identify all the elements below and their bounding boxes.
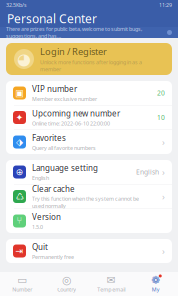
staticText: 20: [157, 89, 165, 97]
staticText: Member exclusive number: [32, 95, 97, 102]
button[interactable]: ⬗: [6, 130, 172, 154]
button[interactable]: ⑂: [6, 209, 172, 233]
button[interactable]: ▣: [6, 81, 172, 105]
staticText: ⊕: [15, 167, 23, 177]
staticText: Language setting: [32, 163, 98, 173]
button[interactable]: ✦: [6, 105, 172, 129]
staticText: Login / Register: [40, 45, 107, 58]
staticText: Online time: 2022-06-10 22:00:00: [32, 120, 110, 127]
staticText: ⇥: [15, 246, 23, 256]
staticText: Favorites: [32, 133, 66, 143]
staticText: My: [152, 286, 160, 293]
staticText: ⑂: [16, 216, 22, 225]
staticText: 11:29: [159, 1, 172, 9]
staticText: ⬗: [16, 137, 23, 147]
staticText: English: [136, 168, 159, 176]
staticText: ♺: [15, 191, 23, 202]
button[interactable]: Country: [44, 272, 89, 296]
staticText: ◕: [17, 50, 31, 68]
staticText: ✦: [15, 112, 23, 123]
button[interactable]: ⇥: [6, 239, 172, 263]
staticText: Permanently free: [32, 253, 74, 260]
staticText: ✉: [107, 274, 116, 286]
staticText: 32.5Kb/s: [6, 1, 27, 9]
staticText: Temp email: [97, 286, 125, 293]
staticText: ▣: [15, 88, 24, 98]
staticText: ›: [162, 136, 165, 148]
staticText: ▭: [17, 274, 27, 286]
staticText: Query all favorite numbers: [32, 144, 96, 151]
staticText: Version: [32, 212, 61, 222]
button[interactable]: ♺: [6, 184, 172, 208]
staticText: ›: [162, 166, 165, 178]
staticText: Personal Center: [7, 10, 97, 26]
button[interactable]: ⊕: [6, 160, 172, 184]
staticText: Clear cache: [32, 184, 75, 194]
button[interactable]: Number: [0, 272, 44, 296]
staticText: Number: [12, 286, 32, 293]
staticText: ◎: [62, 274, 71, 286]
staticText: Try this function when the system cannot…: [32, 195, 139, 209]
staticText: There are prizes for public beta, welcom…: [6, 25, 142, 40]
staticText: Country: [57, 286, 76, 293]
button[interactable]: ◕: [6, 43, 172, 75]
staticText: 10: [157, 113, 165, 122]
staticText: Upcoming new number: [32, 108, 120, 119]
staticText: ›: [162, 245, 165, 257]
staticText: English: [32, 174, 49, 181]
button[interactable]: Temp email: [89, 272, 133, 296]
staticText: VIP number: [32, 84, 77, 94]
staticText: Unlock more functions after logging in a…: [40, 59, 142, 73]
button[interactable]: My: [133, 272, 178, 296]
staticText: Quit: [32, 242, 48, 252]
staticText: ❁: [151, 274, 160, 286]
staticText: ›: [162, 190, 165, 203]
staticText: 1.5.0: [32, 223, 43, 230]
